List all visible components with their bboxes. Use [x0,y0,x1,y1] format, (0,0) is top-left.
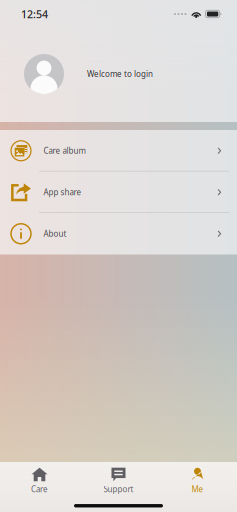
button[interactable]: App share [0,171,237,213]
button[interactable]: Care album [0,130,237,171]
staticText: Me [191,484,203,494]
staticText: Care [31,484,48,494]
staticText: About [43,228,66,239]
button[interactable]: Care [0,466,79,496]
staticText: App share [43,187,81,197]
button[interactable]: Me [158,466,237,496]
staticText: Care album [43,145,85,156]
button[interactable]: Support [79,466,158,496]
staticText: Welcome to login [87,69,153,79]
button[interactable]: About [0,213,237,254]
staticText: Support [103,484,133,494]
staticText: 12:54 [21,7,48,21]
